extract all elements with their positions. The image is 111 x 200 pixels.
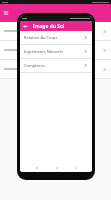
button[interactable] bbox=[0, 41, 111, 59]
button[interactable]: Navigation bbox=[54, 165, 59, 170]
button[interactable]: Navigation bbox=[73, 165, 78, 170]
button[interactable]: Ingrédients Naturels bbox=[20, 45, 92, 58]
button[interactable]: Back bbox=[20, 21, 92, 31]
button[interactable]: Complexes bbox=[20, 59, 92, 72]
button[interactable]: Relation Au Corps bbox=[20, 31, 92, 44]
staticText: Complexes bbox=[24, 63, 45, 68]
staticText: Image du Sol bbox=[33, 23, 65, 30]
button[interactable]: Menu bbox=[0, 4, 111, 22]
button[interactable]: Navigation bbox=[34, 165, 39, 170]
staticText: Relation Au Corps bbox=[24, 35, 58, 40]
other: Menu bbox=[3, 10, 9, 16]
other: Back bbox=[23, 24, 28, 29]
button[interactable] bbox=[0, 60, 111, 78]
staticText: Ingrédients Naturels bbox=[24, 49, 63, 54]
button[interactable] bbox=[0, 22, 111, 40]
